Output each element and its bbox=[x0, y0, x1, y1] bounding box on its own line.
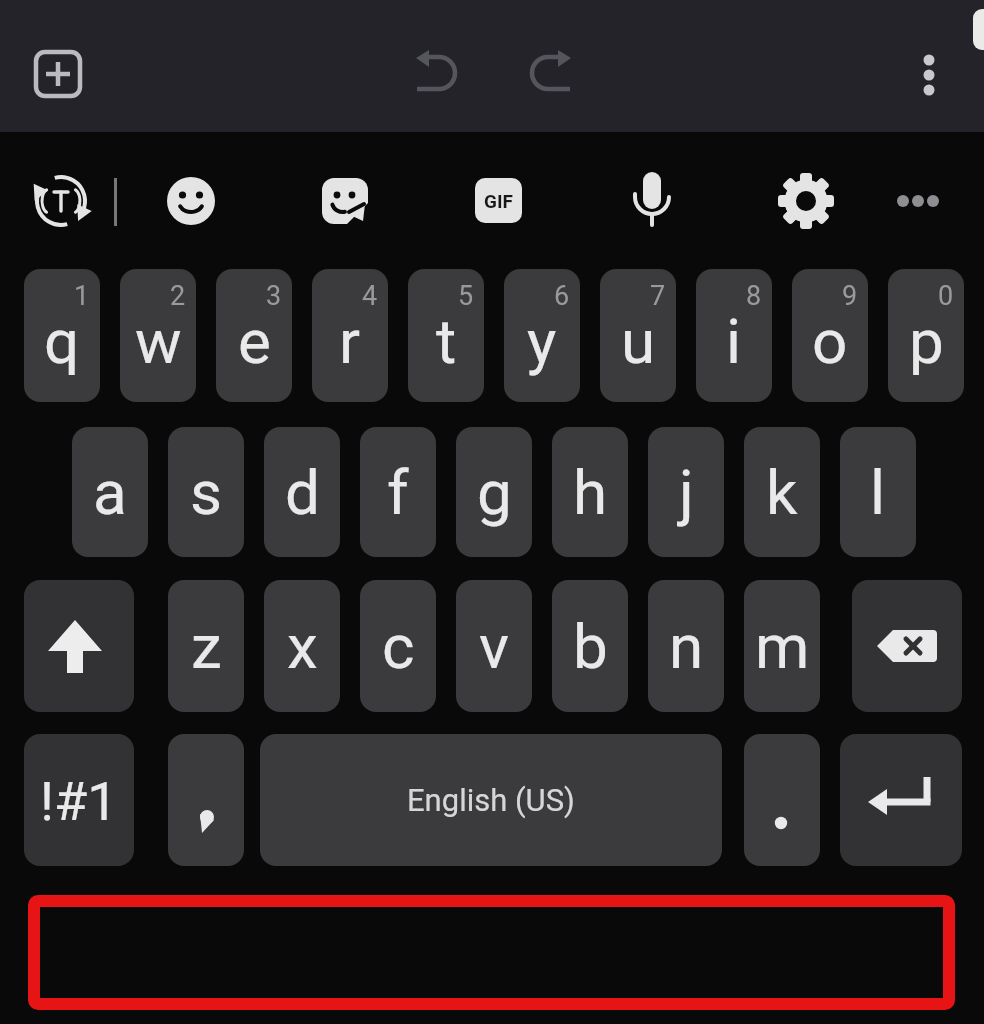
staticText: 8 bbox=[746, 280, 762, 312]
staticText: 1 bbox=[74, 280, 90, 312]
staticText: a bbox=[93, 456, 127, 529]
button[interactable]: English (US) bbox=[260, 734, 722, 866]
button[interactable] bbox=[744, 734, 820, 866]
staticText: 7 bbox=[650, 280, 666, 312]
button[interactable]: q bbox=[24, 269, 100, 402]
staticText: 9 bbox=[842, 280, 858, 312]
staticText: k bbox=[766, 456, 798, 529]
button[interactable]: z bbox=[168, 580, 244, 712]
button[interactable]: f bbox=[360, 427, 436, 557]
staticText: c bbox=[382, 610, 415, 683]
button[interactable]: o bbox=[792, 269, 868, 402]
staticText: d bbox=[285, 456, 320, 529]
button[interactable]: i bbox=[696, 269, 772, 402]
staticText: 0 bbox=[938, 280, 954, 312]
staticText: r bbox=[339, 305, 361, 378]
button[interactable]: d bbox=[264, 427, 340, 557]
staticText: j bbox=[679, 456, 694, 529]
button[interactable]: y bbox=[504, 269, 580, 402]
staticText: z bbox=[191, 610, 222, 683]
staticText: y bbox=[527, 305, 557, 378]
staticText: 4 bbox=[362, 280, 378, 312]
staticText: 6 bbox=[554, 280, 570, 312]
button[interactable]: u bbox=[600, 269, 676, 402]
button[interactable]: x bbox=[264, 580, 340, 712]
staticText: 2 bbox=[170, 280, 186, 312]
staticText: s bbox=[190, 456, 222, 529]
button[interactable]: k bbox=[744, 427, 820, 557]
staticText: t bbox=[436, 305, 457, 378]
staticText: w bbox=[135, 305, 182, 378]
button[interactable]: b bbox=[552, 580, 628, 712]
button[interactable]: e bbox=[216, 269, 292, 402]
staticText: v bbox=[479, 610, 510, 683]
button[interactable]: j bbox=[648, 427, 724, 557]
staticText: m bbox=[755, 610, 810, 683]
staticText: x bbox=[287, 610, 318, 683]
button[interactable] bbox=[624, 168, 680, 232]
button[interactable]: c bbox=[360, 580, 436, 712]
staticText: n bbox=[669, 610, 704, 683]
button[interactable]: h bbox=[552, 427, 628, 557]
button[interactable]: !#1 bbox=[24, 734, 134, 866]
staticText: g bbox=[477, 456, 512, 529]
button[interactable] bbox=[163, 173, 219, 229]
button[interactable]: n bbox=[648, 580, 724, 712]
button[interactable]: m bbox=[744, 580, 820, 712]
staticText: GIF bbox=[484, 190, 513, 212]
staticText: b bbox=[573, 610, 608, 683]
button[interactable]: p bbox=[888, 269, 964, 402]
button[interactable]: GIF bbox=[475, 178, 522, 223]
button[interactable] bbox=[24, 580, 134, 712]
button[interactable] bbox=[24, 40, 92, 108]
staticText: q bbox=[44, 305, 80, 378]
button[interactable]: r bbox=[312, 269, 388, 402]
staticText: u bbox=[621, 305, 656, 378]
button[interactable] bbox=[523, 45, 579, 101]
staticText: e bbox=[238, 305, 271, 378]
button[interactable]: g bbox=[456, 427, 532, 557]
staticText: English (US) bbox=[407, 782, 575, 818]
staticText: o bbox=[812, 305, 848, 378]
staticText: p bbox=[909, 305, 944, 378]
staticText: 3 bbox=[266, 280, 282, 312]
staticText: h bbox=[573, 456, 608, 529]
button[interactable]: s bbox=[168, 427, 244, 557]
button[interactable] bbox=[408, 45, 464, 101]
button[interactable] bbox=[778, 173, 834, 229]
button[interactable] bbox=[852, 580, 962, 712]
staticText: !#1 bbox=[40, 770, 118, 833]
button[interactable] bbox=[33, 173, 89, 229]
button[interactable] bbox=[168, 734, 244, 866]
button[interactable] bbox=[317, 173, 373, 229]
button[interactable]: a bbox=[72, 427, 148, 557]
button[interactable] bbox=[840, 734, 962, 866]
button[interactable]: v bbox=[456, 580, 532, 712]
button[interactable]: w bbox=[120, 269, 196, 402]
staticText: l bbox=[870, 456, 886, 529]
button[interactable] bbox=[901, 47, 957, 103]
button[interactable]: t bbox=[408, 269, 484, 402]
staticText: 5 bbox=[458, 280, 474, 312]
button[interactable]: l bbox=[840, 427, 916, 557]
staticText: f bbox=[387, 456, 409, 529]
button[interactable] bbox=[890, 173, 946, 229]
staticText: i bbox=[726, 305, 742, 378]
